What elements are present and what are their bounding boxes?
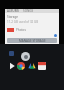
button[interactable]: Play Store (8, 62, 16, 70)
button[interactable]: App (9, 51, 14, 56)
staticText: Photos (16, 28, 26, 32)
button[interactable]: MANAGE STORAGE (7, 38, 57, 43)
staticText: 11.2 GB used of 32 GB (7, 20, 39, 24)
staticText: ALBUMS (7, 9, 20, 13)
staticText: MANAGE STORAGE (19, 39, 46, 43)
staticText: SONGS (23, 9, 34, 13)
button[interactable]: Photos (7, 28, 57, 32)
button[interactable]: Docs (38, 62, 46, 70)
button[interactable]: Assistant (21, 52, 30, 61)
button[interactable]: Chrome (17, 62, 25, 70)
button[interactable]: Drive (28, 62, 36, 70)
button[interactable]: Info (54, 34, 57, 37)
staticText: Storage (7, 15, 18, 19)
